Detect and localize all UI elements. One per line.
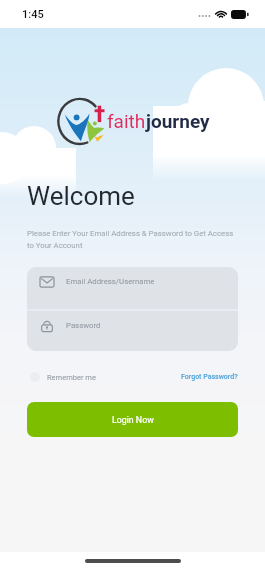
button[interactable]: Forgot Password?: [181, 373, 238, 381]
staticText: Password: [66, 321, 101, 330]
staticText: 1:45: [22, 8, 44, 21]
staticText: Remember me: [47, 373, 96, 382]
button[interactable]: Email address field: [27, 267, 238, 309]
button[interactable]: Login Now: [27, 402, 238, 437]
staticText: Forgot Password?: [181, 373, 238, 381]
staticText: Email Address/Username: [66, 277, 155, 286]
button[interactable]: Remember me: [27, 372, 96, 382]
button[interactable]: Password field: [27, 311, 238, 351]
staticText: Please Enter Your Email Address & Passwo…: [27, 229, 238, 250]
staticText: Login Now: [112, 415, 154, 425]
staticText: journey: [146, 110, 210, 132]
staticText: Welcome: [27, 181, 135, 211]
staticText: faith: [107, 110, 146, 132]
